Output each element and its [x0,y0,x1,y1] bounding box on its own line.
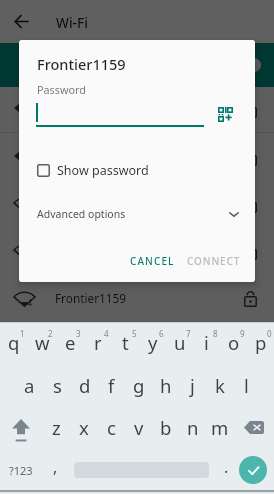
button[interactable]: x [70,410,98,450]
button[interactable]: XFINITY [0,227,274,274]
staticText: , [53,456,58,478]
staticText: f [108,373,115,398]
staticText: 3 [76,328,81,339]
staticText: c [107,415,116,440]
staticText: q [8,330,20,355]
button[interactable]: HOME-A1B2 [0,180,274,227]
staticText: 5 [132,328,137,339]
button[interactable]: 9 [220,326,247,365]
button[interactable]: g [125,368,152,408]
staticText: t [122,330,129,355]
button[interactable]: 4 [84,326,112,365]
staticText: l [244,373,249,398]
button[interactable]: Gmqiswnr [0,85,274,132]
staticText: 8 [213,328,218,339]
button[interactable]: j [179,368,206,408]
button[interactable]: 8 [193,326,220,365]
button[interactable]: Wi-Fi toggle [229,54,261,76]
staticText: a [24,373,35,398]
button[interactable]: CANCEL [124,248,181,274]
button[interactable]: n [179,410,206,450]
staticText: . [224,456,229,478]
staticText: d [79,373,91,398]
staticText: w [35,330,50,355]
staticText: Advanced options [37,207,126,221]
button[interactable]: l [233,368,260,408]
button[interactable]: Back [10,10,33,33]
button[interactable]: 2 [28,326,56,365]
staticText: Wi-Fi [56,13,88,32]
button[interactable]: 0 [247,326,274,365]
staticText: p [255,330,267,355]
button[interactable]: Space [69,450,213,490]
button[interactable]: z [42,410,70,450]
button[interactable]: 7 [166,326,193,365]
button[interactable]: Enter [235,450,271,490]
staticText: Frontier1159 [55,290,127,306]
staticText: 7 [186,328,191,339]
staticText: m [211,415,229,440]
button[interactable]: , [41,450,69,490]
button[interactable]: Neighbor_5G [0,133,274,180]
button[interactable]: b [152,410,179,450]
button[interactable]: k [206,368,233,408]
staticText: HOME-A1B2 [55,196,123,212]
staticText: 9 [240,328,245,339]
button[interactable]: s [43,368,71,408]
button[interactable]: f [98,368,125,408]
button[interactable]: h [152,368,179,408]
button[interactable]: 5 [112,326,139,365]
staticText: v [134,415,144,440]
staticText: 2 [48,328,53,339]
staticText: CONNECT [187,254,241,268]
button[interactable]: Shift [0,410,42,450]
staticText: z [52,415,61,440]
button[interactable]: 3 [56,326,84,365]
staticText: j [190,373,195,398]
staticText: b [160,415,172,440]
staticText: o [228,330,240,355]
button[interactable]: 1 [0,326,28,365]
staticText: r [94,330,102,355]
button[interactable]: c [98,410,125,450]
button[interactable]: Backspace [233,410,274,450]
button[interactable]: 6 [139,326,166,365]
button[interactable]: v [125,410,152,450]
staticText: u [174,330,186,355]
staticText: k [215,373,225,398]
button[interactable]: Scan QR code [213,102,237,126]
staticText: 4 [27,296,33,308]
staticText: n [187,415,199,440]
button[interactable]: a [15,368,43,408]
button[interactable]: m [206,410,233,450]
staticText: y [148,330,158,355]
staticText: e [65,330,76,355]
staticText: 6 [159,328,164,339]
staticText: g [133,373,145,398]
button[interactable]: d [71,368,98,408]
staticText: s [53,373,62,398]
staticText: CANCEL [130,254,175,268]
button[interactable]: ?123 [0,450,41,490]
staticText: 1 [20,328,25,339]
staticText: Password [37,82,86,97]
button[interactable]: 4 [0,274,274,321]
staticText: i [204,330,209,355]
staticText: Show password [57,162,149,179]
staticText: x [79,415,89,440]
staticText: Frontier1159 [37,54,126,74]
staticText: ?123 [9,463,33,478]
button[interactable]: CONNECT [181,248,247,274]
staticText: 4 [104,328,109,339]
button[interactable]: Show password [37,162,149,179]
staticText: 0 [267,328,272,339]
button[interactable]: . [213,450,239,490]
button[interactable]: Advanced options [19,203,255,225]
staticText: h [160,373,172,398]
